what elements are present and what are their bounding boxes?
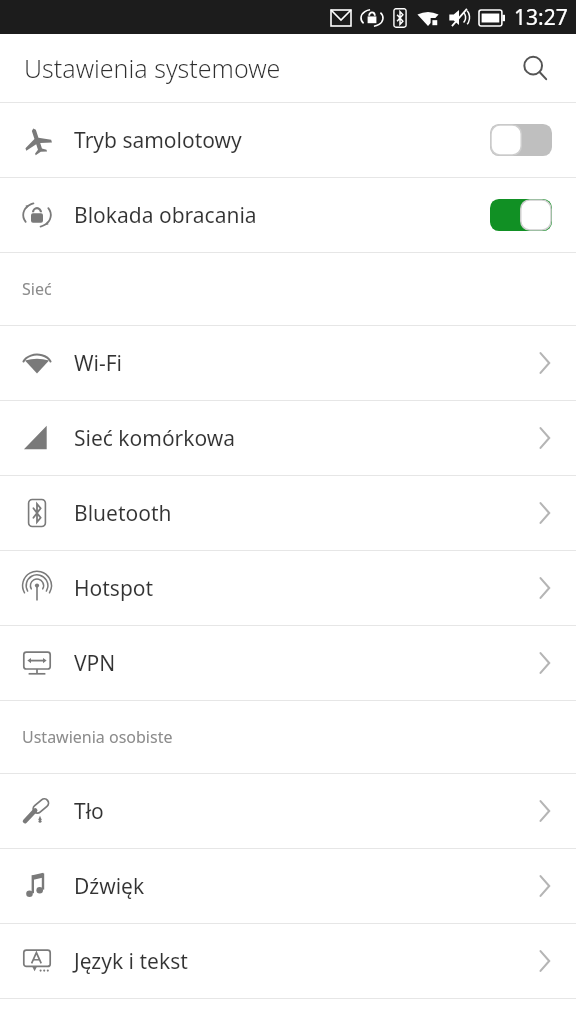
staticText: Sieć komórkowa xyxy=(74,424,236,453)
staticText: Wi-Fi xyxy=(74,349,123,378)
staticText: Hotspot xyxy=(74,574,154,603)
button[interactable]: Tło xyxy=(0,774,576,848)
staticText: Ustawienia systemowe xyxy=(24,51,281,85)
staticText: Bluetooth xyxy=(74,499,172,528)
button[interactable]: Tryb samolotowy xyxy=(490,124,552,156)
button[interactable]: Search xyxy=(512,45,558,91)
staticText: 13:27 xyxy=(514,3,568,32)
staticText: VPN xyxy=(74,649,116,678)
button[interactable]: Wi-Fi xyxy=(0,326,576,400)
button[interactable]: Blokada obracania xyxy=(0,178,576,252)
button[interactable]: Hotspot xyxy=(0,551,576,625)
button[interactable]: Bluetooth xyxy=(0,476,576,550)
staticText: Ustawienia osobiste xyxy=(22,726,173,748)
button[interactable]: Tryb samolotowy xyxy=(0,103,576,177)
staticText: Język i tekst xyxy=(74,947,188,976)
button[interactable]: Dźwięk xyxy=(0,849,576,923)
staticText: Tło xyxy=(74,797,104,826)
button[interactable]: Sieć komórkowa xyxy=(0,401,576,475)
staticText: Blokada obracania xyxy=(74,201,257,230)
staticText: Dźwięk xyxy=(74,872,145,901)
button[interactable]: Blokada obracania xyxy=(490,199,552,231)
staticText: Sieć xyxy=(22,278,52,300)
button[interactable]: Język i tekst xyxy=(0,924,576,998)
button[interactable]: VPN xyxy=(0,626,576,700)
staticText: Tryb samolotowy xyxy=(74,126,242,155)
